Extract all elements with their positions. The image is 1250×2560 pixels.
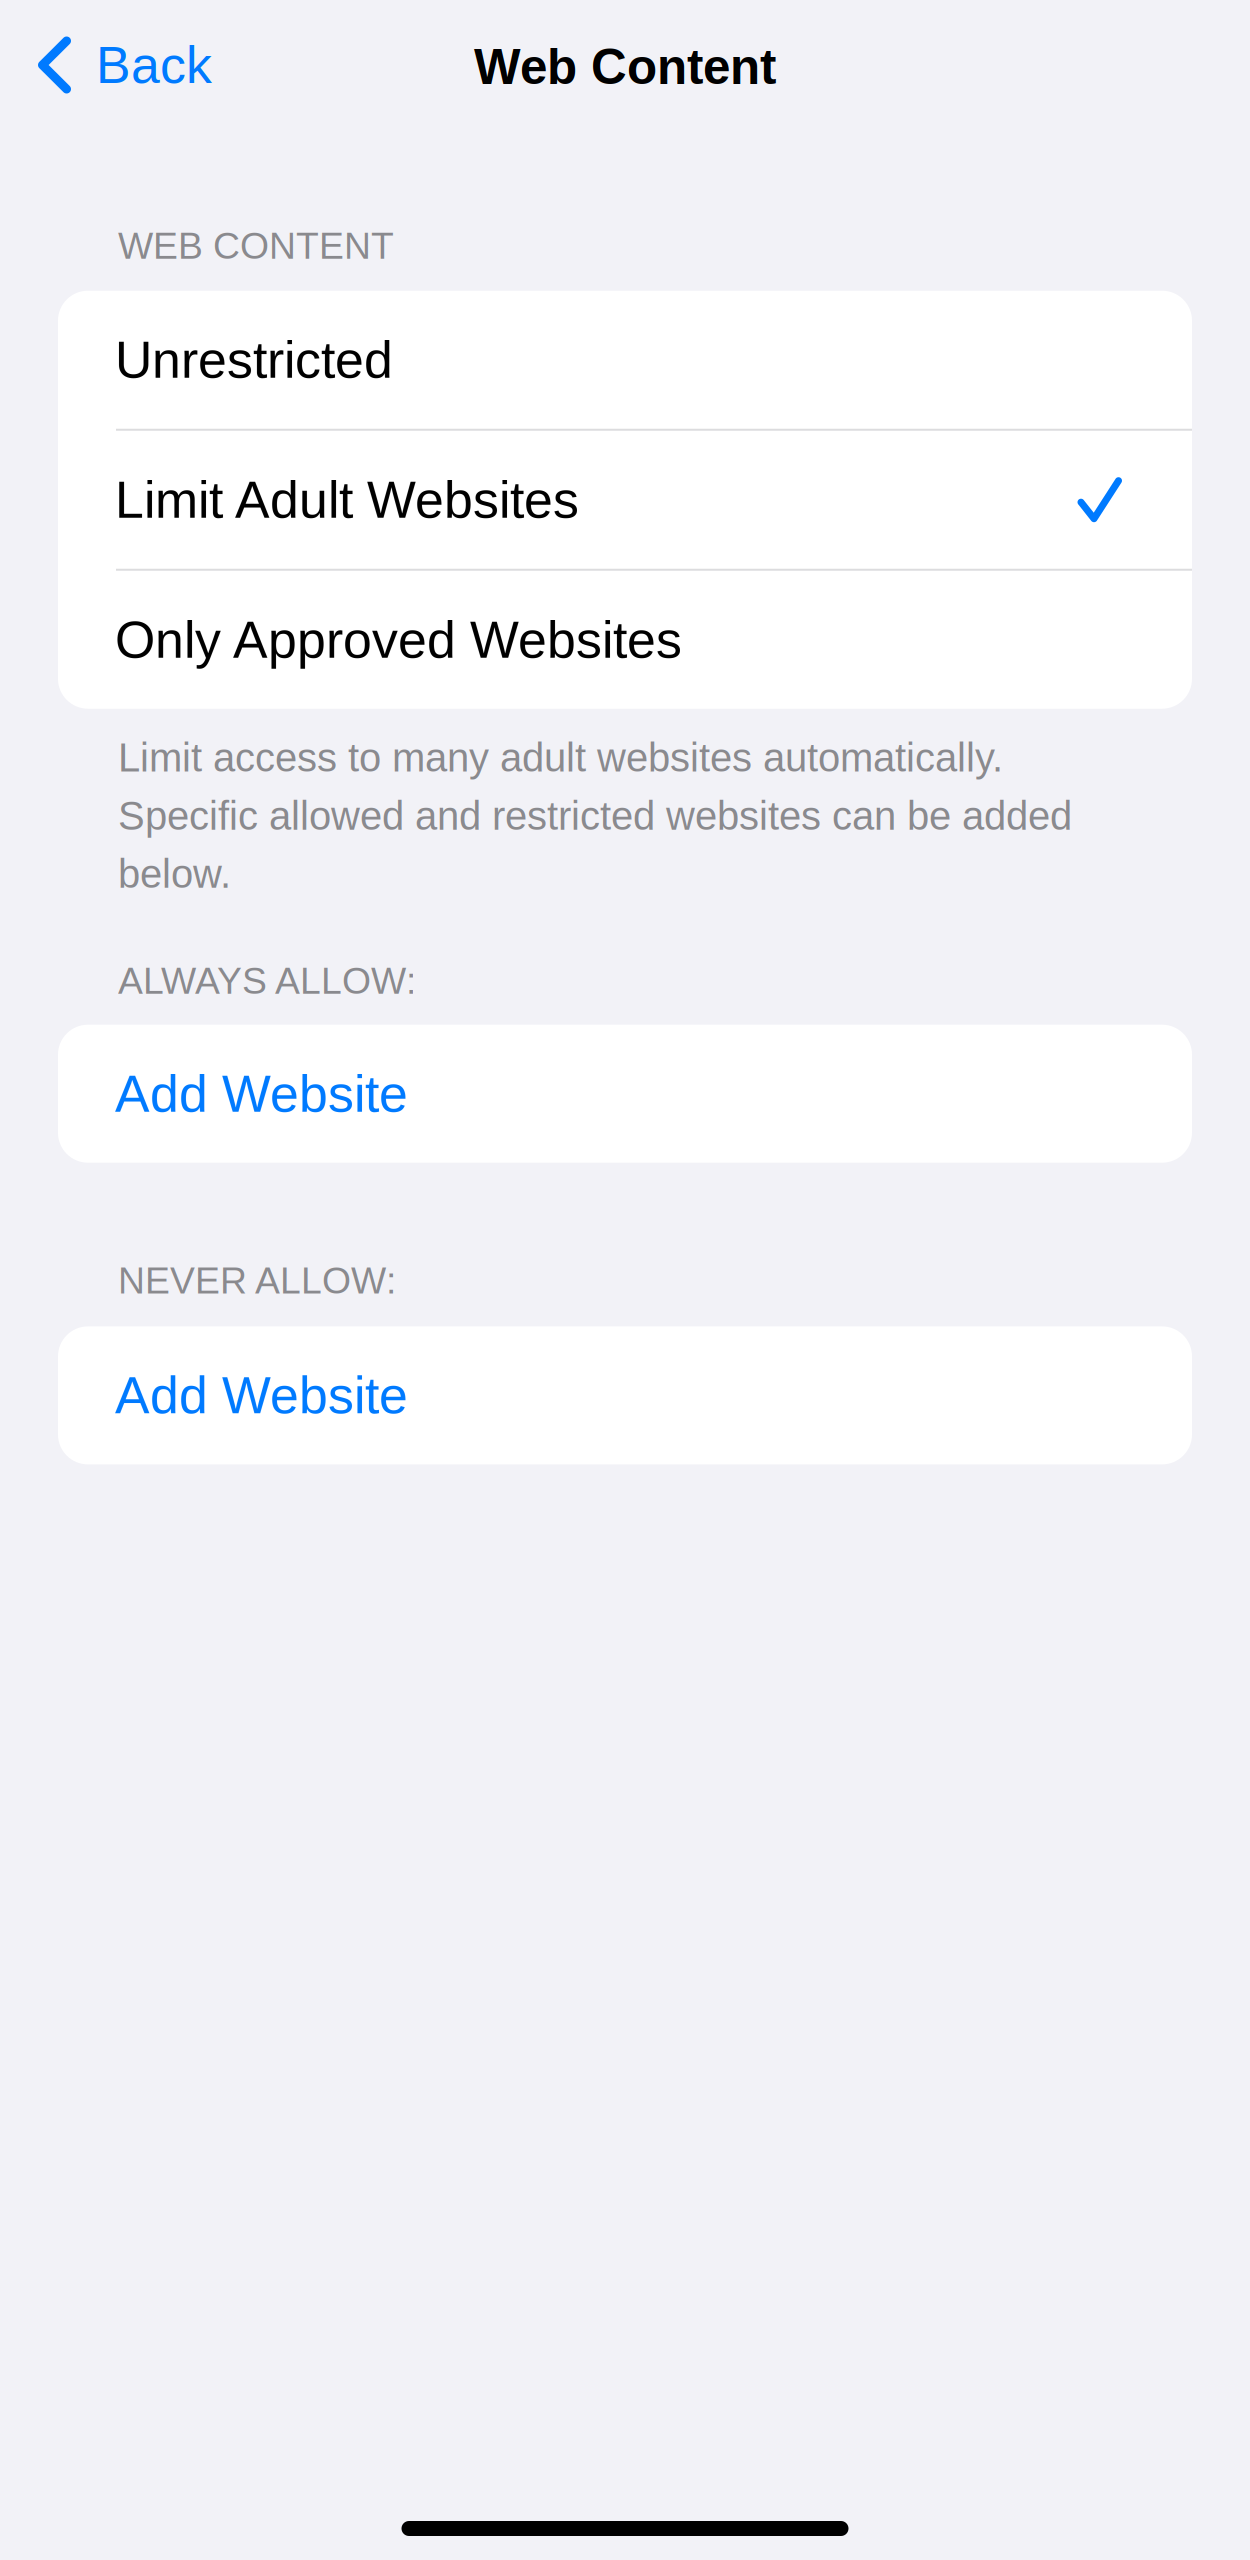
staticText: Add Website <box>115 1065 408 1123</box>
button[interactable]: Limit Adult Websites <box>58 431 1192 569</box>
staticText: Limit access to many adult websites auto… <box>118 729 1072 903</box>
button[interactable]: Add Website <box>58 1025 1192 1163</box>
staticText: WEB CONTENT <box>118 225 394 267</box>
staticText: Add Website <box>115 1366 408 1424</box>
staticText: ALWAYS ALLOW: <box>118 960 416 1002</box>
button[interactable]: Add Website <box>58 1326 1192 1464</box>
button[interactable]: Unrestricted <box>58 291 1192 429</box>
staticText: Limit Adult Websites <box>115 471 579 529</box>
staticText: NEVER ALLOW: <box>118 1260 396 1301</box>
staticText: Unrestricted <box>115 331 393 389</box>
staticText: Web Content <box>474 39 776 94</box>
button[interactable]: Only Approved Websites <box>58 571 1192 709</box>
button[interactable]: Back <box>0 0 236 130</box>
staticText: Only Approved Websites <box>115 611 682 669</box>
staticText: Back <box>96 36 212 94</box>
